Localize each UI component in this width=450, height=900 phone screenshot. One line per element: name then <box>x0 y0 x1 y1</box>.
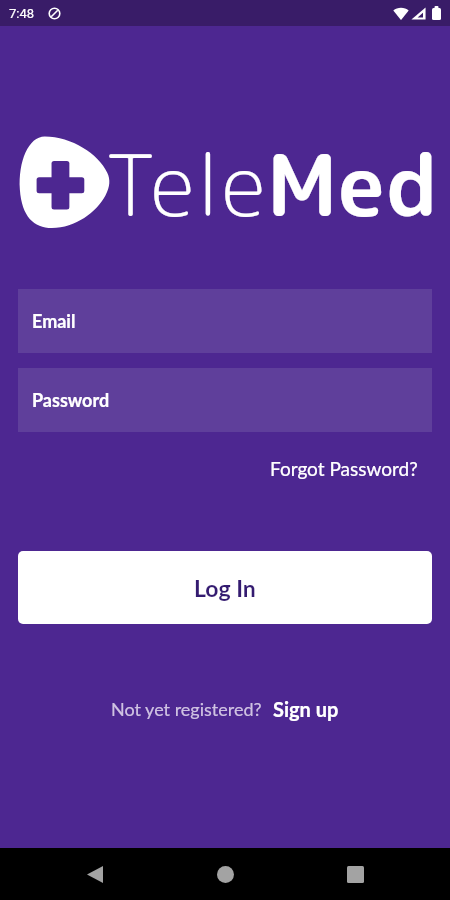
button[interactable]: Forgot Password? <box>270 452 450 485</box>
staticText: Password <box>32 389 110 411</box>
staticText: Not yet registered? <box>111 698 262 720</box>
staticText: Forgot Password? <box>270 457 418 480</box>
staticText: Email <box>32 310 76 332</box>
button[interactable]: Recent apps <box>331 850 379 898</box>
button[interactable]: Email <box>18 289 432 353</box>
button[interactable]: Home <box>201 850 249 898</box>
button[interactable]: Password <box>18 368 432 432</box>
button[interactable]: Back <box>71 850 119 898</box>
staticText: Log In <box>194 574 256 602</box>
staticText: Tele <box>104 126 267 243</box>
button[interactable]: Log In <box>18 551 432 624</box>
button[interactable]: Sign up <box>273 697 339 721</box>
staticText: 7:48 <box>9 6 35 21</box>
staticText: Sign up <box>273 697 339 721</box>
staticText: Med <box>267 126 439 243</box>
